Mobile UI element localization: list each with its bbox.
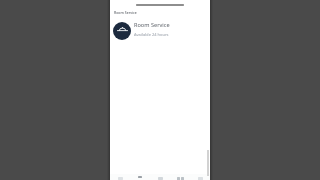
button[interactable]: Rooms: [150, 174, 170, 180]
button[interactable]: Dining: [130, 174, 150, 180]
staticText: Room Service: [114, 10, 137, 15]
button[interactable]: Room Service: [113, 22, 207, 40]
button[interactable]: Home: [110, 174, 130, 180]
button[interactable]: Profile: [190, 174, 210, 180]
staticText: Available 24 hours: [134, 32, 169, 37]
button[interactable]: Spa: [170, 174, 190, 180]
staticText: Room Service: [134, 21, 170, 29]
